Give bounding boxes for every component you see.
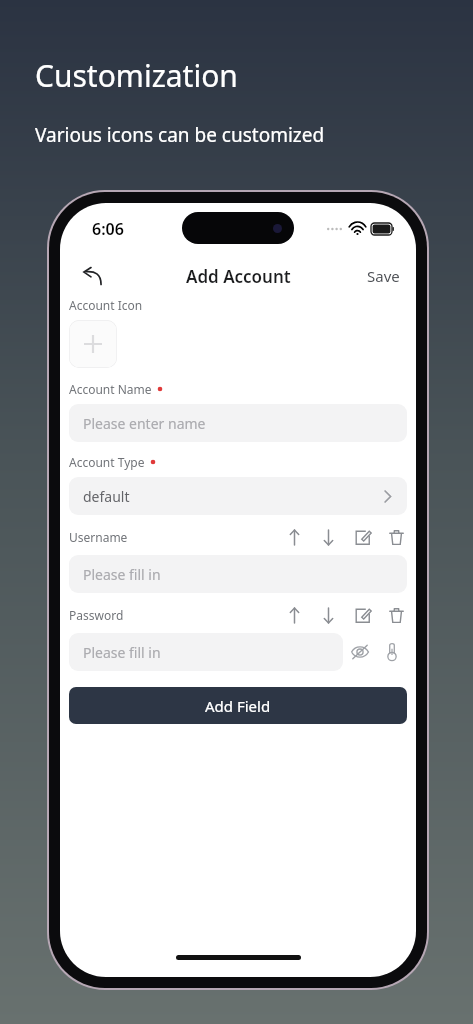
staticText: Please fill in — [83, 565, 161, 584]
staticText: Add Account — [186, 265, 291, 288]
staticText: Password — [69, 607, 124, 623]
button[interactable]: Move up — [283, 526, 305, 548]
staticText: Please fill in — [83, 643, 161, 662]
button[interactable]: Delete — [385, 526, 407, 548]
staticText: Save — [367, 266, 400, 286]
staticText: Account Name — [69, 381, 152, 397]
button[interactable]: Edit — [351, 604, 373, 626]
button[interactable]: Please enter name — [69, 404, 407, 442]
button[interactable]: Please fill in — [69, 555, 407, 593]
button[interactable]: Save — [359, 260, 408, 292]
button[interactable]: Please fill in — [69, 633, 343, 671]
button[interactable]: Back — [74, 258, 110, 294]
staticText: Username — [69, 529, 128, 545]
staticText: Account Icon — [69, 297, 143, 313]
staticText: default — [83, 487, 130, 506]
button[interactable]: Add icon — [69, 320, 117, 368]
button[interactable]: Move down — [317, 604, 339, 626]
button[interactable]: Edit — [351, 526, 373, 548]
staticText: Customization — [35, 55, 238, 96]
button[interactable]: Toggle visibility — [343, 635, 377, 669]
staticText: Various icons can be customized — [35, 122, 325, 148]
button[interactable]: Move down — [317, 526, 339, 548]
staticText: Add Field — [205, 696, 271, 716]
button[interactable]: Move up — [283, 604, 305, 626]
staticText: Please enter name — [83, 414, 206, 433]
button[interactable]: default — [69, 477, 407, 515]
button[interactable]: Generate password — [377, 637, 407, 667]
staticText: Account Type — [69, 454, 145, 470]
button[interactable]: Add Field — [69, 687, 407, 724]
staticText: 6:06 — [92, 218, 124, 240]
button[interactable]: Delete — [385, 604, 407, 626]
